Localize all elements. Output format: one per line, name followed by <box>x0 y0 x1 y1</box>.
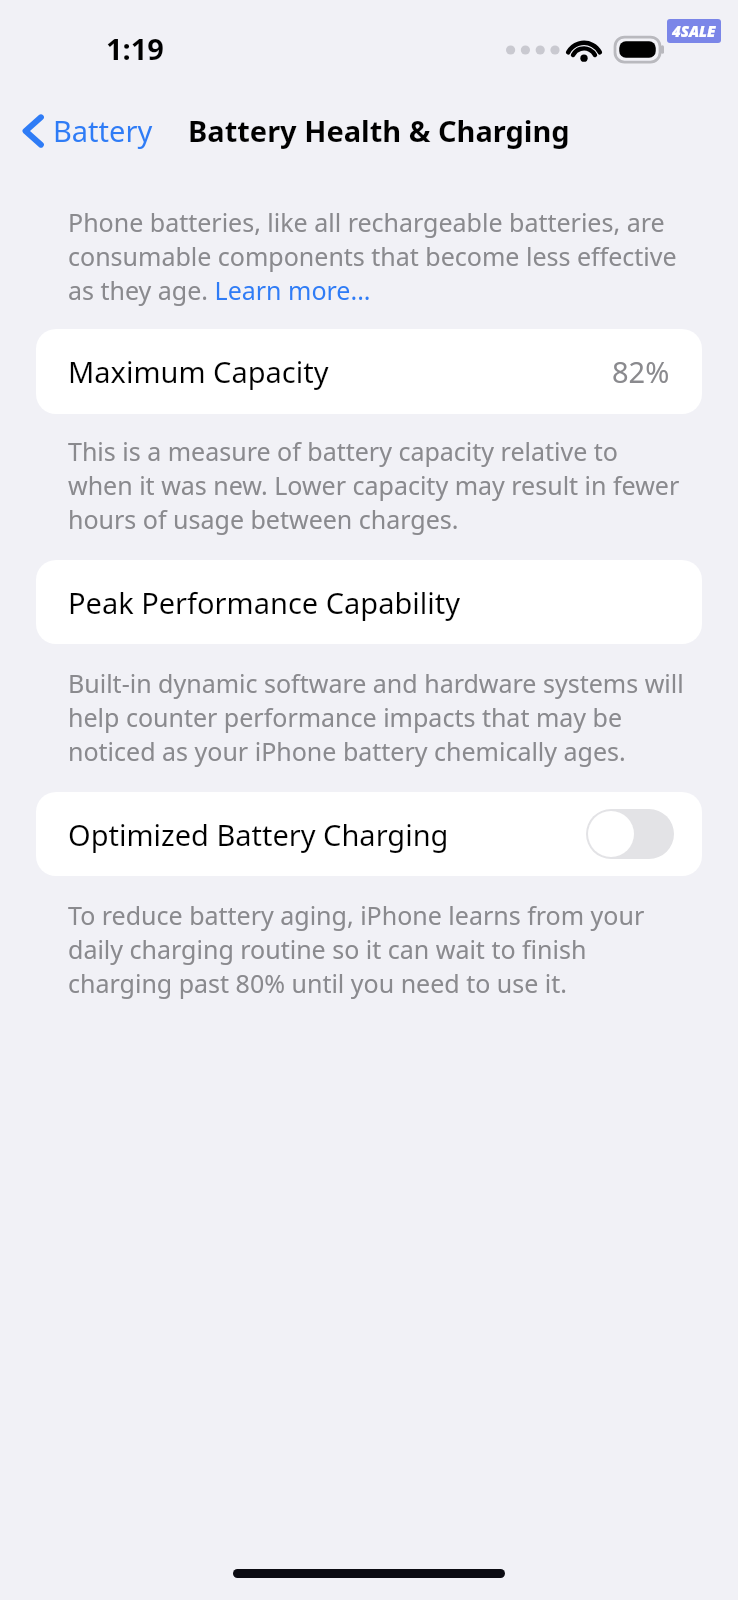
button[interactable]: Optimized Battery Charging toggle, off <box>586 809 674 859</box>
button[interactable]: Battery <box>16 105 163 156</box>
staticText: 1:19 <box>106 29 164 68</box>
staticText: Maximum Capacity <box>68 352 612 391</box>
staticText: 82% <box>612 352 670 391</box>
button[interactable]: Maximum Capacity <box>36 329 702 414</box>
staticText: To reduce battery aging, iPhone learns f… <box>68 898 682 1000</box>
button[interactable]: Phone batteries, like all rechargeable b… <box>68 205 680 307</box>
staticText: Optimized Battery Charging <box>68 815 586 854</box>
button[interactable]: Peak Performance Capability <box>36 560 702 644</box>
staticText: Peak Performance Capability <box>68 583 460 622</box>
staticText: This is a measure of battery capacity re… <box>68 434 680 536</box>
staticText: 4SALE <box>672 21 716 41</box>
staticText: Built-in dynamic software and hardware s… <box>68 666 690 768</box>
staticText: Battery <box>53 111 153 150</box>
staticText: Battery Health & Charging <box>188 111 570 150</box>
